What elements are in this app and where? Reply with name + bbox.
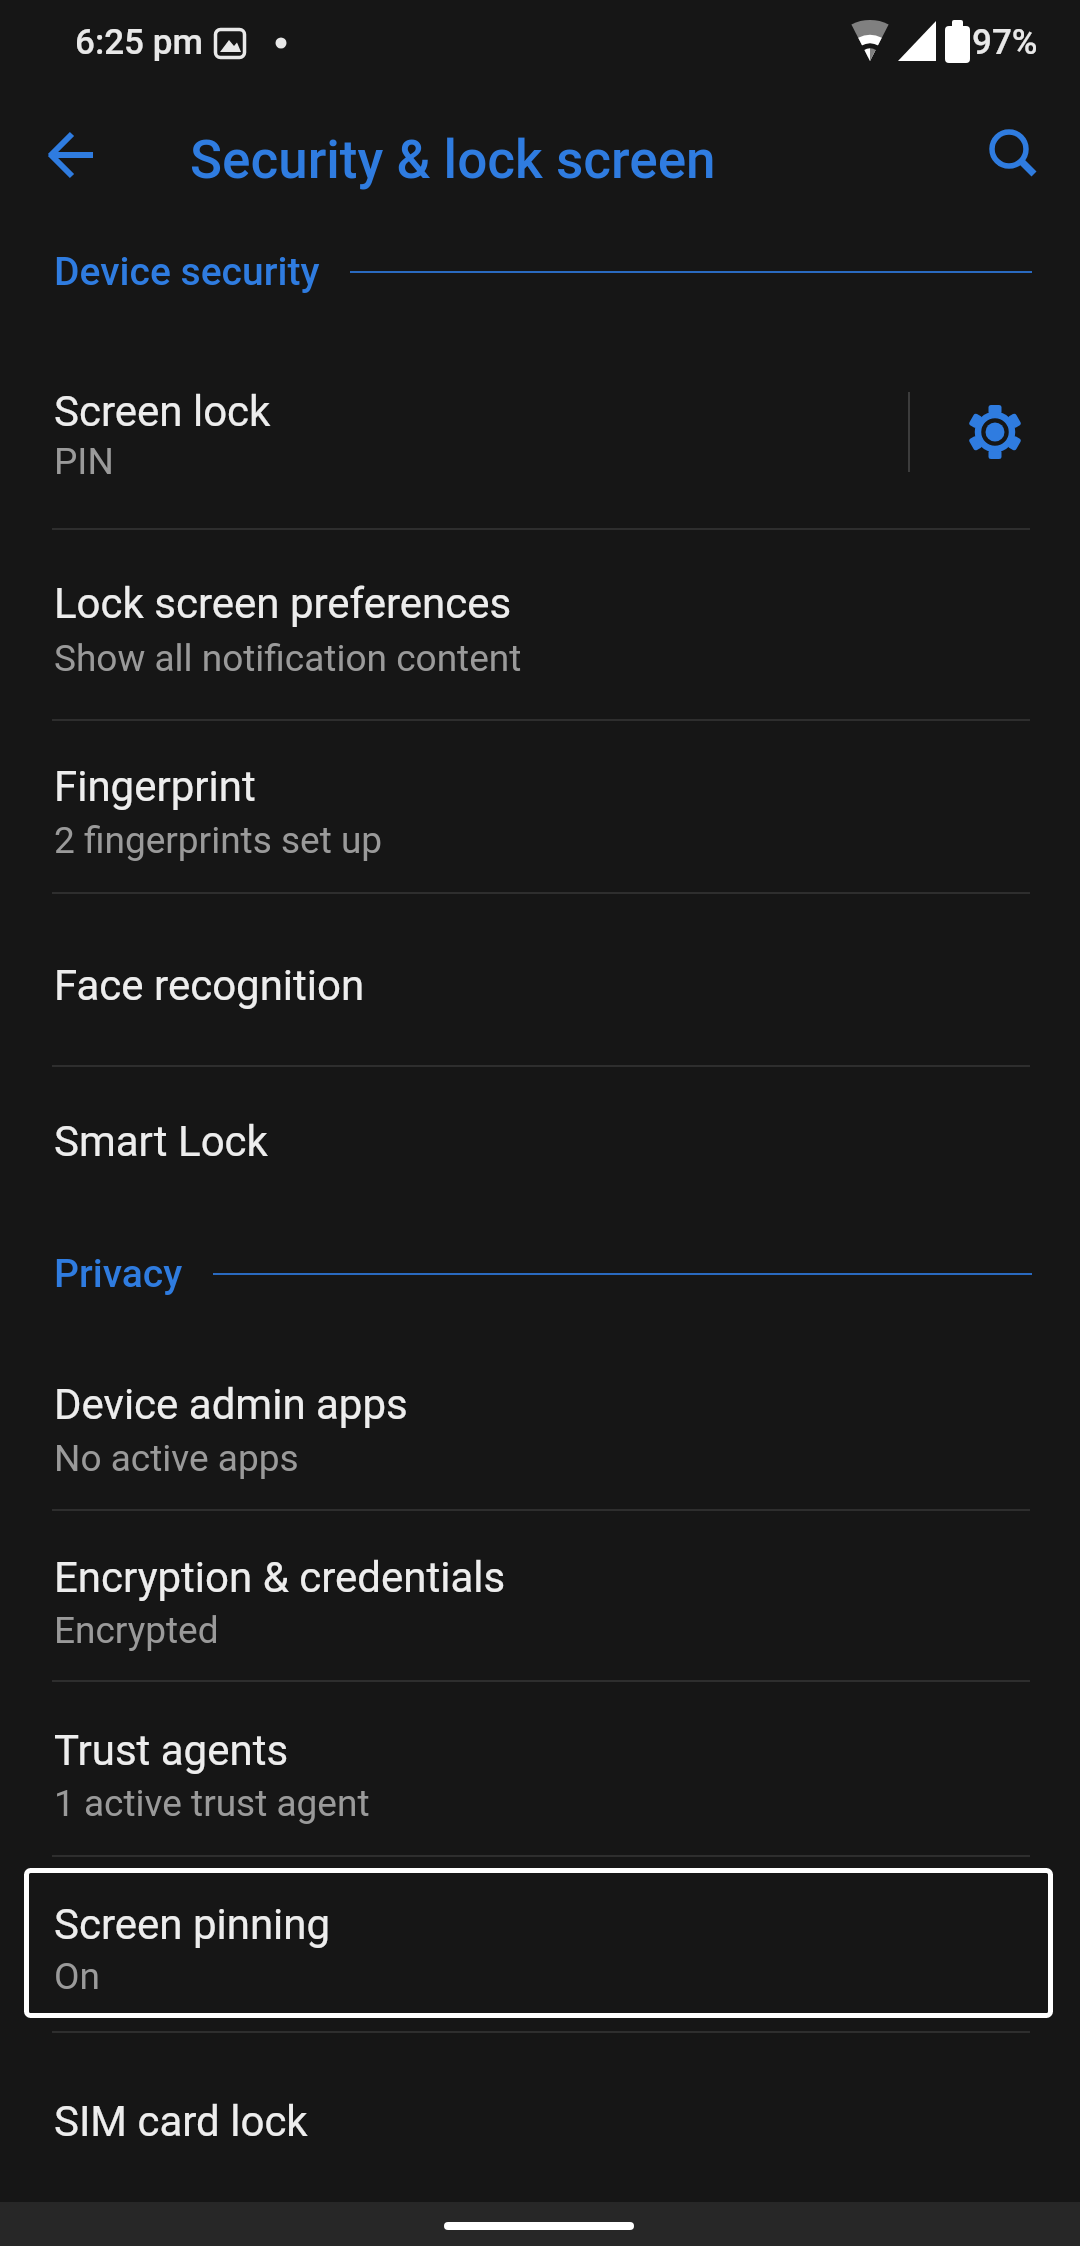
staticText: Face recognition xyxy=(54,961,365,1010)
staticText: Device security xyxy=(54,249,320,295)
staticText: Lock screen preferences xyxy=(54,579,512,628)
button[interactable]: SIM card lock xyxy=(0,2032,1080,2200)
button[interactable] xyxy=(955,392,1035,472)
staticText: Screen pinning xyxy=(54,1900,331,1949)
staticText: Encryption & credentials xyxy=(54,1553,506,1602)
staticText: 97% xyxy=(972,22,1038,63)
staticText: Smart Lock xyxy=(54,1117,268,1166)
staticText: Privacy xyxy=(54,1251,183,1297)
button[interactable]: Fingerprint xyxy=(0,720,1080,892)
staticText: Show all notification content xyxy=(54,637,522,680)
staticText: On xyxy=(54,1955,100,1998)
button[interactable]: Lock screen preferences xyxy=(0,529,1080,719)
staticText: 6:25 pm xyxy=(75,22,203,63)
button[interactable]: Face recognition xyxy=(0,893,1080,1065)
staticText: No active apps xyxy=(54,1437,299,1480)
button[interactable]: Trust agents xyxy=(0,1681,1080,1855)
button[interactable]: Screen lock xyxy=(0,324,1080,528)
button[interactable] xyxy=(30,113,114,197)
staticText: Device admin apps xyxy=(54,1380,408,1429)
staticText: Screen lock xyxy=(54,387,271,436)
staticText: Trust agents xyxy=(54,1726,289,1775)
staticText: PIN xyxy=(54,440,114,483)
staticText: Encrypted xyxy=(54,1609,219,1652)
button[interactable]: Smart Lock xyxy=(0,1066,1080,1210)
button[interactable]: Device admin apps xyxy=(0,1325,1080,1509)
staticText: Fingerprint xyxy=(54,762,256,811)
button[interactable] xyxy=(972,112,1056,196)
button[interactable]: Encryption & credentials xyxy=(0,1510,1080,1680)
staticText: SIM card lock xyxy=(54,2097,308,2146)
staticText: 1 active trust agent xyxy=(54,1782,370,1825)
button[interactable]: Screen pinning xyxy=(0,1856,1080,2031)
staticText: Security & lock screen xyxy=(190,129,716,191)
staticText: 2 fingerprints set up xyxy=(54,819,383,862)
